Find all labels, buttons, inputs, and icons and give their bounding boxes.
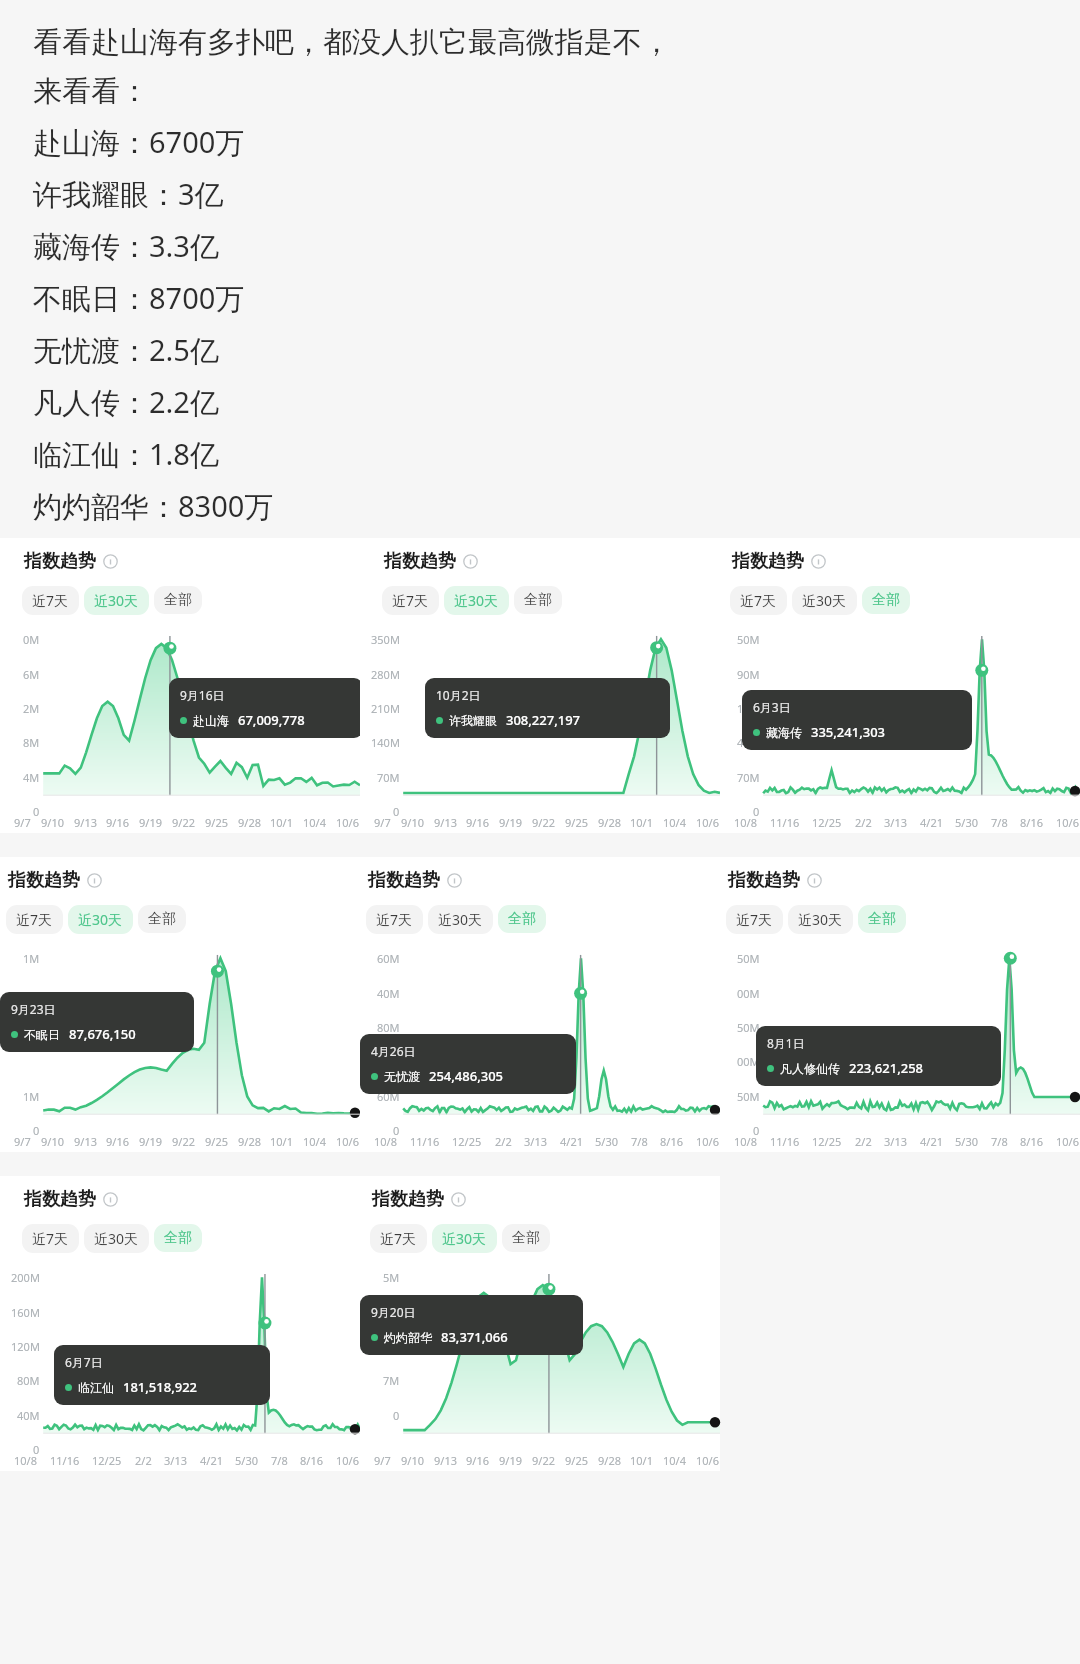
staticText: 9/19 <box>499 1453 522 1468</box>
staticText: 10/4 <box>303 815 326 830</box>
button[interactable]: 9月20日 <box>360 1295 583 1355</box>
button[interactable]: 近7天 <box>730 586 787 615</box>
button[interactable]: 近7天 <box>6 905 63 934</box>
staticText: 9/10 <box>401 815 424 830</box>
button[interactable]: 近30天 <box>432 1224 497 1253</box>
staticText: 9/13 <box>434 1453 457 1468</box>
staticText: 87,676,150 <box>69 1025 136 1043</box>
button[interactable]: Info <box>451 1192 466 1207</box>
staticText: 9/13 <box>74 815 97 830</box>
button[interactable]: 近7天 <box>370 1224 427 1253</box>
button[interactable]: 全部 <box>514 586 562 614</box>
button[interactable]: 9月16日 <box>169 678 363 738</box>
staticText: 40M <box>737 735 760 750</box>
button[interactable]: 近30天 <box>792 586 857 615</box>
staticText: 不眠日 <box>24 1027 60 1042</box>
button[interactable]: 近30天 <box>428 905 493 934</box>
button[interactable]: 全部 <box>862 586 910 614</box>
staticText: 0 <box>33 1123 40 1138</box>
staticText: 近30天 <box>442 1229 487 1248</box>
staticText: 40M <box>17 1408 40 1423</box>
staticText: 近7天 <box>392 591 429 610</box>
button[interactable]: Info <box>447 873 462 888</box>
button[interactable]: Info <box>463 554 478 569</box>
staticText: 不眠日：8700万 <box>33 278 245 318</box>
button[interactable]: 全部 <box>502 1224 550 1252</box>
staticText: 5/30 <box>235 1453 258 1468</box>
staticText: 10/1 <box>270 1134 293 1149</box>
button[interactable]: 近7天 <box>726 905 783 934</box>
staticText: 9/7 <box>14 1134 31 1149</box>
button[interactable]: Info <box>811 554 826 569</box>
staticText: 无忧渡 <box>384 1069 420 1084</box>
staticText: 7/8 <box>631 1134 648 1149</box>
staticText: 12/25 <box>92 1453 122 1468</box>
staticText: 全部 <box>524 591 552 609</box>
button[interactable]: Info <box>87 873 102 888</box>
staticText: 全部 <box>868 910 896 928</box>
staticText: 200M <box>11 1270 40 1285</box>
staticText: 10/1 <box>630 815 653 830</box>
button[interactable]: 近30天 <box>84 1224 149 1253</box>
staticText: 5/30 <box>955 815 978 830</box>
staticText: 11/16 <box>410 1134 440 1149</box>
staticText: 9/19 <box>139 1134 162 1149</box>
staticText: 20M <box>377 1054 400 1069</box>
staticText: 4月26日 <box>371 1043 416 1059</box>
staticText: 3/13 <box>524 1134 547 1149</box>
staticText: 0 <box>753 1123 760 1138</box>
staticText: 9/22 <box>532 815 555 830</box>
button[interactable]: 4月26日 <box>360 1034 576 1094</box>
staticText: 50M <box>737 1020 760 1035</box>
button[interactable]: 近30天 <box>444 586 509 615</box>
staticText: 350M <box>371 632 400 647</box>
button[interactable]: 10月2日 <box>425 678 670 738</box>
button[interactable]: 全部 <box>498 905 546 933</box>
staticText: 10/1 <box>270 815 293 830</box>
button[interactable]: 9月23日 <box>0 992 194 1052</box>
button[interactable]: 近7天 <box>366 905 423 934</box>
staticText: 近30天 <box>438 910 483 929</box>
staticText: 40M <box>377 986 400 1001</box>
button[interactable]: Info <box>807 873 822 888</box>
staticText: 11/16 <box>50 1453 80 1468</box>
staticText: 50M <box>737 951 760 966</box>
staticText: 10/6 <box>336 1134 359 1149</box>
staticText: 10/4 <box>663 815 686 830</box>
staticText: 0M <box>23 632 40 647</box>
staticText: 近7天 <box>736 910 773 929</box>
button[interactable]: 近7天 <box>22 586 79 615</box>
staticText: 10/6 <box>1056 815 1079 830</box>
button[interactable]: 全部 <box>154 1224 202 1252</box>
button[interactable]: 6月3日 <box>742 690 972 750</box>
staticText: 无忧渡：2.5亿 <box>33 330 219 370</box>
staticText: 140M <box>371 735 400 750</box>
button[interactable]: 近7天 <box>382 586 439 615</box>
staticText: 0 <box>753 804 760 819</box>
staticText: 9/19 <box>499 815 522 830</box>
button[interactable]: 近30天 <box>68 905 133 934</box>
button[interactable]: Info <box>103 554 118 569</box>
staticText: 5/30 <box>595 1134 618 1149</box>
staticText: 3/13 <box>884 815 907 830</box>
staticText: 9月16日 <box>180 687 225 703</box>
button[interactable]: 全部 <box>154 586 202 614</box>
staticText: 许我耀眼：3亿 <box>33 174 224 214</box>
button[interactable]: 6月7日 <box>54 1345 270 1405</box>
button[interactable]: 全部 <box>138 905 186 933</box>
staticText: 许我耀眼 <box>449 713 497 728</box>
button[interactable]: 近7天 <box>22 1224 79 1253</box>
button[interactable]: Info <box>103 1192 118 1207</box>
staticText: 8/16 <box>660 1134 683 1149</box>
button[interactable]: 近30天 <box>788 905 853 934</box>
staticText: 10/6 <box>696 1453 719 1468</box>
staticText: 赴山海 <box>193 713 229 728</box>
button[interactable]: 8月1日 <box>756 1026 1001 1086</box>
staticText: 10/1 <box>630 1453 653 1468</box>
staticText: 9/7 <box>14 815 31 830</box>
staticText: 9/16 <box>466 1453 489 1468</box>
button[interactable]: 近30天 <box>84 586 149 615</box>
staticText: 5/30 <box>955 1134 978 1149</box>
button[interactable]: 全部 <box>858 905 906 933</box>
staticText: 9月23日 <box>11 1001 56 1017</box>
